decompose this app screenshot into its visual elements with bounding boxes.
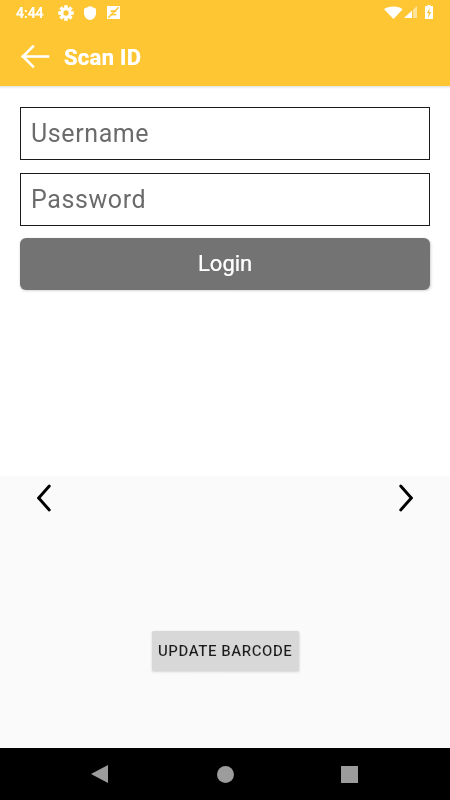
button[interactable]: Back <box>75 750 123 798</box>
staticText: Password <box>31 185 147 214</box>
button[interactable]: Password <box>20 173 430 226</box>
staticText: Username <box>31 119 150 148</box>
button[interactable]: Username <box>20 107 430 160</box>
button[interactable]: Recent apps <box>325 750 373 798</box>
button[interactable]: UPDATE BARCODE <box>152 631 299 671</box>
staticText: Login <box>198 251 253 277</box>
button[interactable]: Back <box>12 33 58 79</box>
button[interactable]: Home <box>201 750 249 798</box>
button[interactable]: Previous barcode <box>28 482 60 514</box>
staticText: UPDATE BARCODE <box>158 642 293 660</box>
staticText: Scan ID <box>64 45 142 71</box>
button[interactable]: Login <box>20 238 430 290</box>
staticText: 4:44 <box>16 5 44 21</box>
button[interactable]: Next barcode <box>390 482 422 514</box>
